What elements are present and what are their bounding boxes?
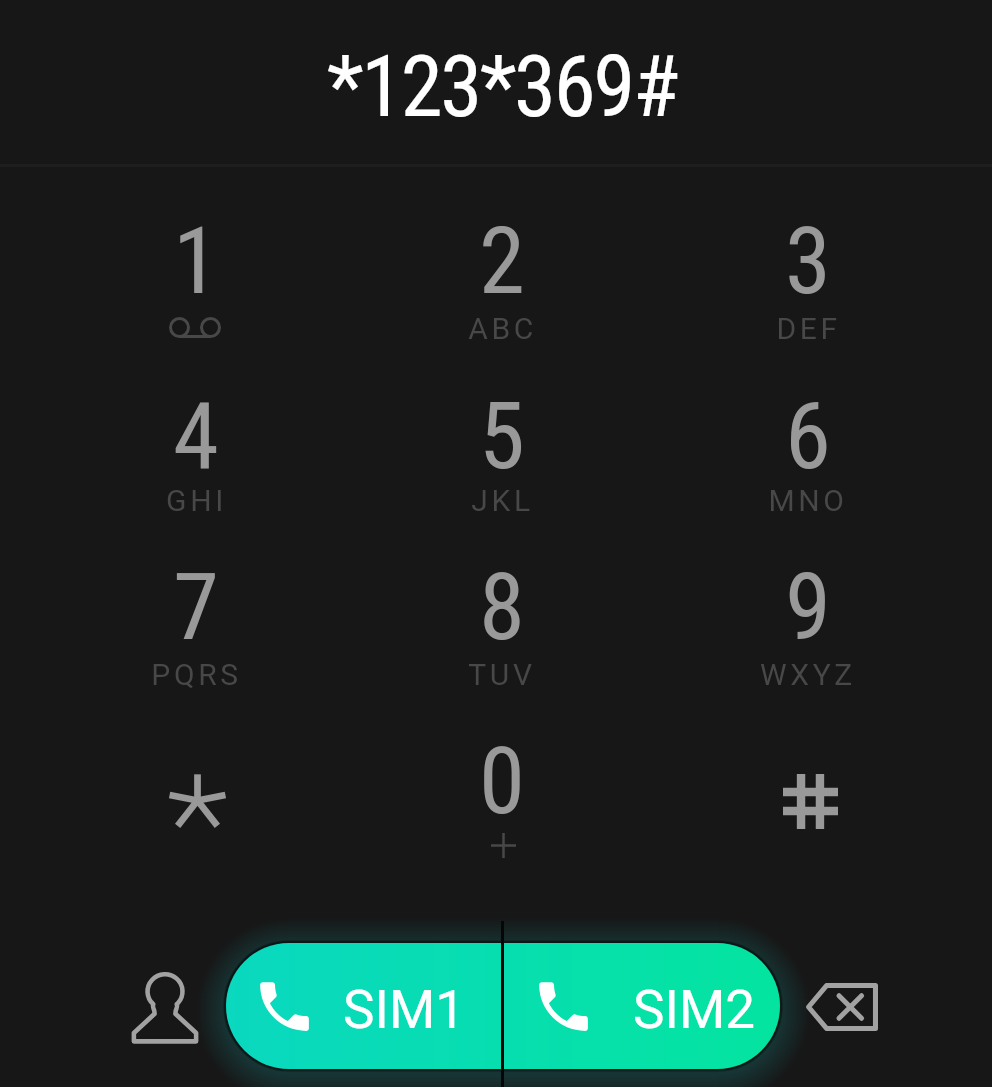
button[interactable] xyxy=(655,713,961,873)
staticText: 5 xyxy=(479,382,525,491)
button[interactable]: 0 xyxy=(349,713,655,873)
staticText: JKL xyxy=(471,483,534,518)
button[interactable]: 1 xyxy=(43,193,349,353)
staticText: 6 xyxy=(785,382,831,491)
staticText: 1 xyxy=(173,207,219,316)
button[interactable]: Backspace xyxy=(777,942,907,1072)
button[interactable]: 9 xyxy=(655,539,961,699)
button[interactable]: 4 xyxy=(43,368,349,528)
staticText: SIM1 xyxy=(343,979,465,1041)
button[interactable]: SIM1 xyxy=(226,943,503,1069)
button[interactable]: 7 xyxy=(43,539,349,699)
button[interactable]: Contacts xyxy=(100,943,230,1073)
staticText: 4 xyxy=(173,382,219,491)
staticText: *123*369# xyxy=(327,37,677,137)
staticText: 8 xyxy=(479,553,525,662)
button[interactable]: 5 xyxy=(349,368,655,528)
button[interactable]: 2 xyxy=(349,193,655,353)
staticText: TUV xyxy=(468,657,536,692)
staticText: DEF xyxy=(776,311,841,346)
button[interactable]: 3 xyxy=(655,193,961,353)
button[interactable]: 8 xyxy=(349,539,655,699)
button[interactable] xyxy=(43,713,349,873)
staticText: SIM2 xyxy=(633,979,755,1041)
staticText: WXYZ xyxy=(760,657,856,692)
staticText: 9 xyxy=(785,553,831,662)
staticText: 2 xyxy=(479,207,525,316)
staticText: 0 xyxy=(479,727,525,836)
staticText: ABC xyxy=(468,311,537,346)
staticText: MNO xyxy=(768,483,848,518)
button[interactable]: 6 xyxy=(655,368,961,528)
staticText: PQRS xyxy=(151,657,242,692)
button[interactable]: SIM2 xyxy=(503,943,780,1069)
staticText: GHI xyxy=(166,483,227,518)
staticText: 3 xyxy=(785,207,831,316)
staticText: 7 xyxy=(173,553,219,662)
